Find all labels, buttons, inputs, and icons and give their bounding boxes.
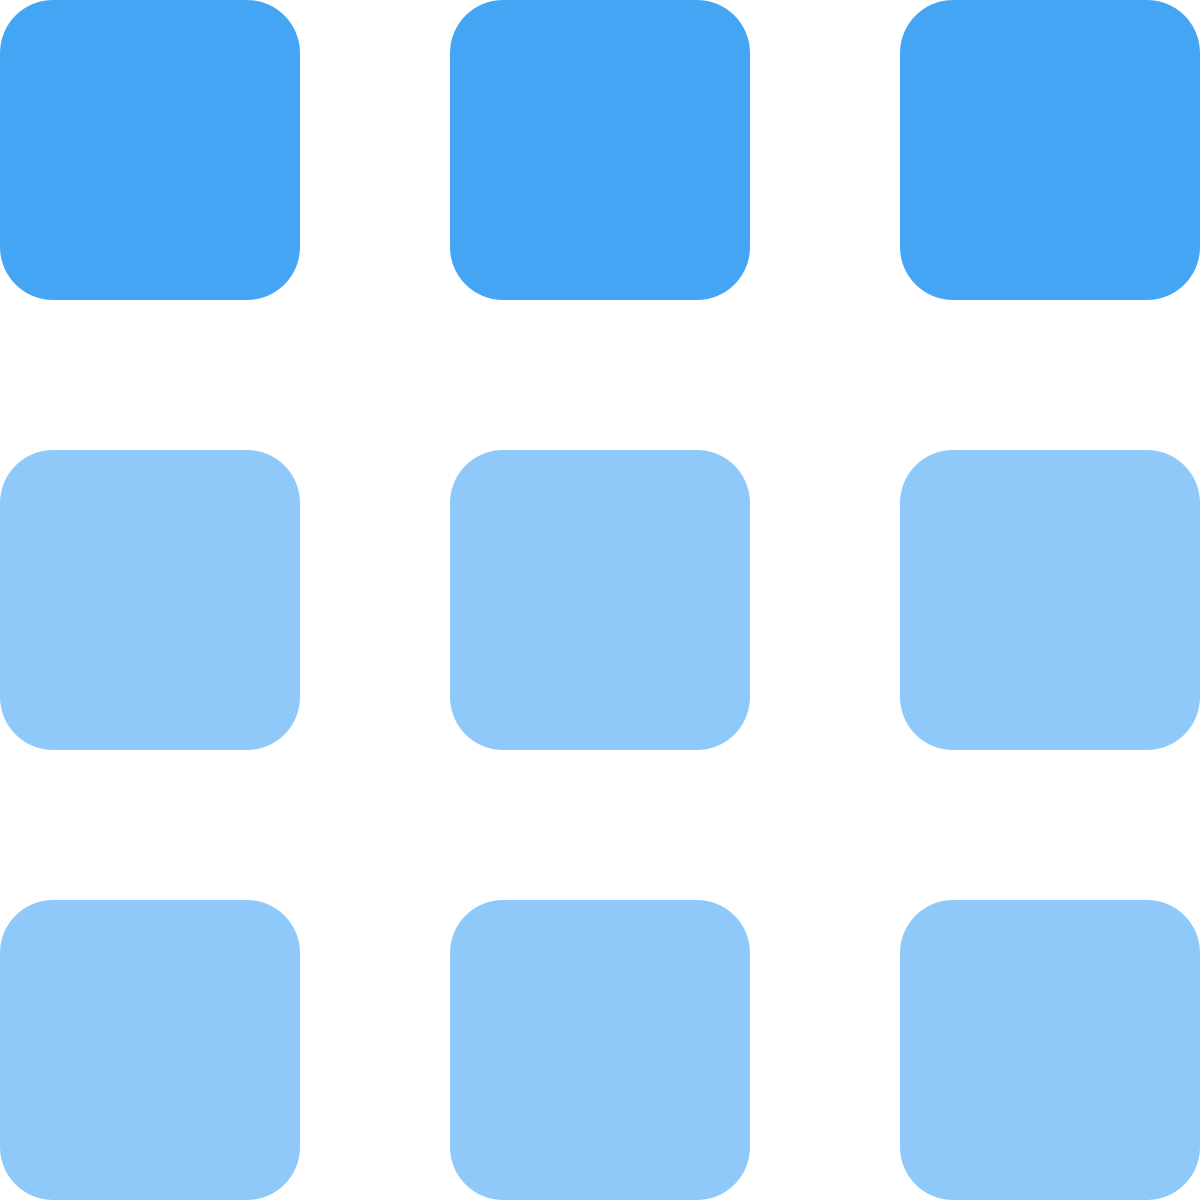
button[interactable]: App 3 (900, 0, 1200, 300)
button[interactable]: App 1 (0, 0, 300, 300)
button[interactable]: App 8 (450, 900, 750, 1200)
button[interactable]: App 6 (900, 450, 1200, 750)
button[interactable]: App 5 (450, 450, 750, 750)
button[interactable]: App 4 (0, 450, 300, 750)
button[interactable]: App 9 (900, 900, 1200, 1200)
button[interactable]: App 2 (450, 0, 750, 300)
button[interactable]: App 7 (0, 900, 300, 1200)
